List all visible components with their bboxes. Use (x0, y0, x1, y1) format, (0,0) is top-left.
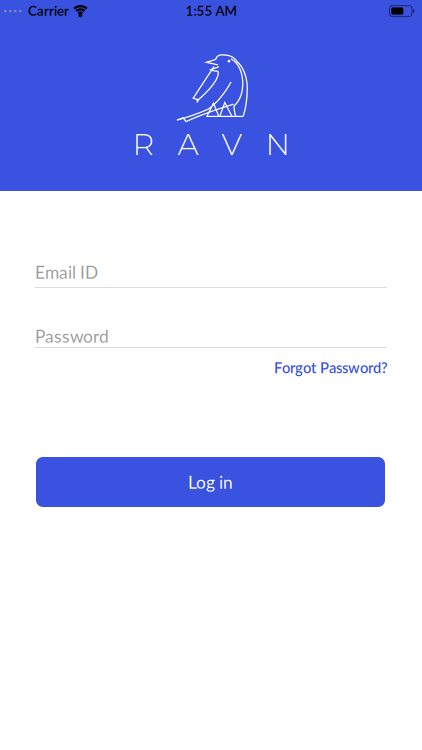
staticText: V (221, 126, 242, 163)
staticText: Forgot Password? (274, 359, 388, 376)
staticText: Email ID (35, 262, 98, 282)
staticText: N (265, 126, 289, 163)
staticText: A (177, 126, 198, 163)
staticText: R (132, 126, 154, 163)
staticText: Password (35, 326, 109, 346)
staticText: Log in (188, 472, 233, 492)
button[interactable]: Forgot Password? (274, 359, 388, 376)
staticText: 1:55 AM (185, 3, 236, 18)
button[interactable]: Log in (36, 457, 385, 507)
button[interactable]: Email ID (35, 262, 387, 288)
staticText: Carrier (28, 3, 69, 18)
button[interactable]: Password (35, 326, 387, 348)
